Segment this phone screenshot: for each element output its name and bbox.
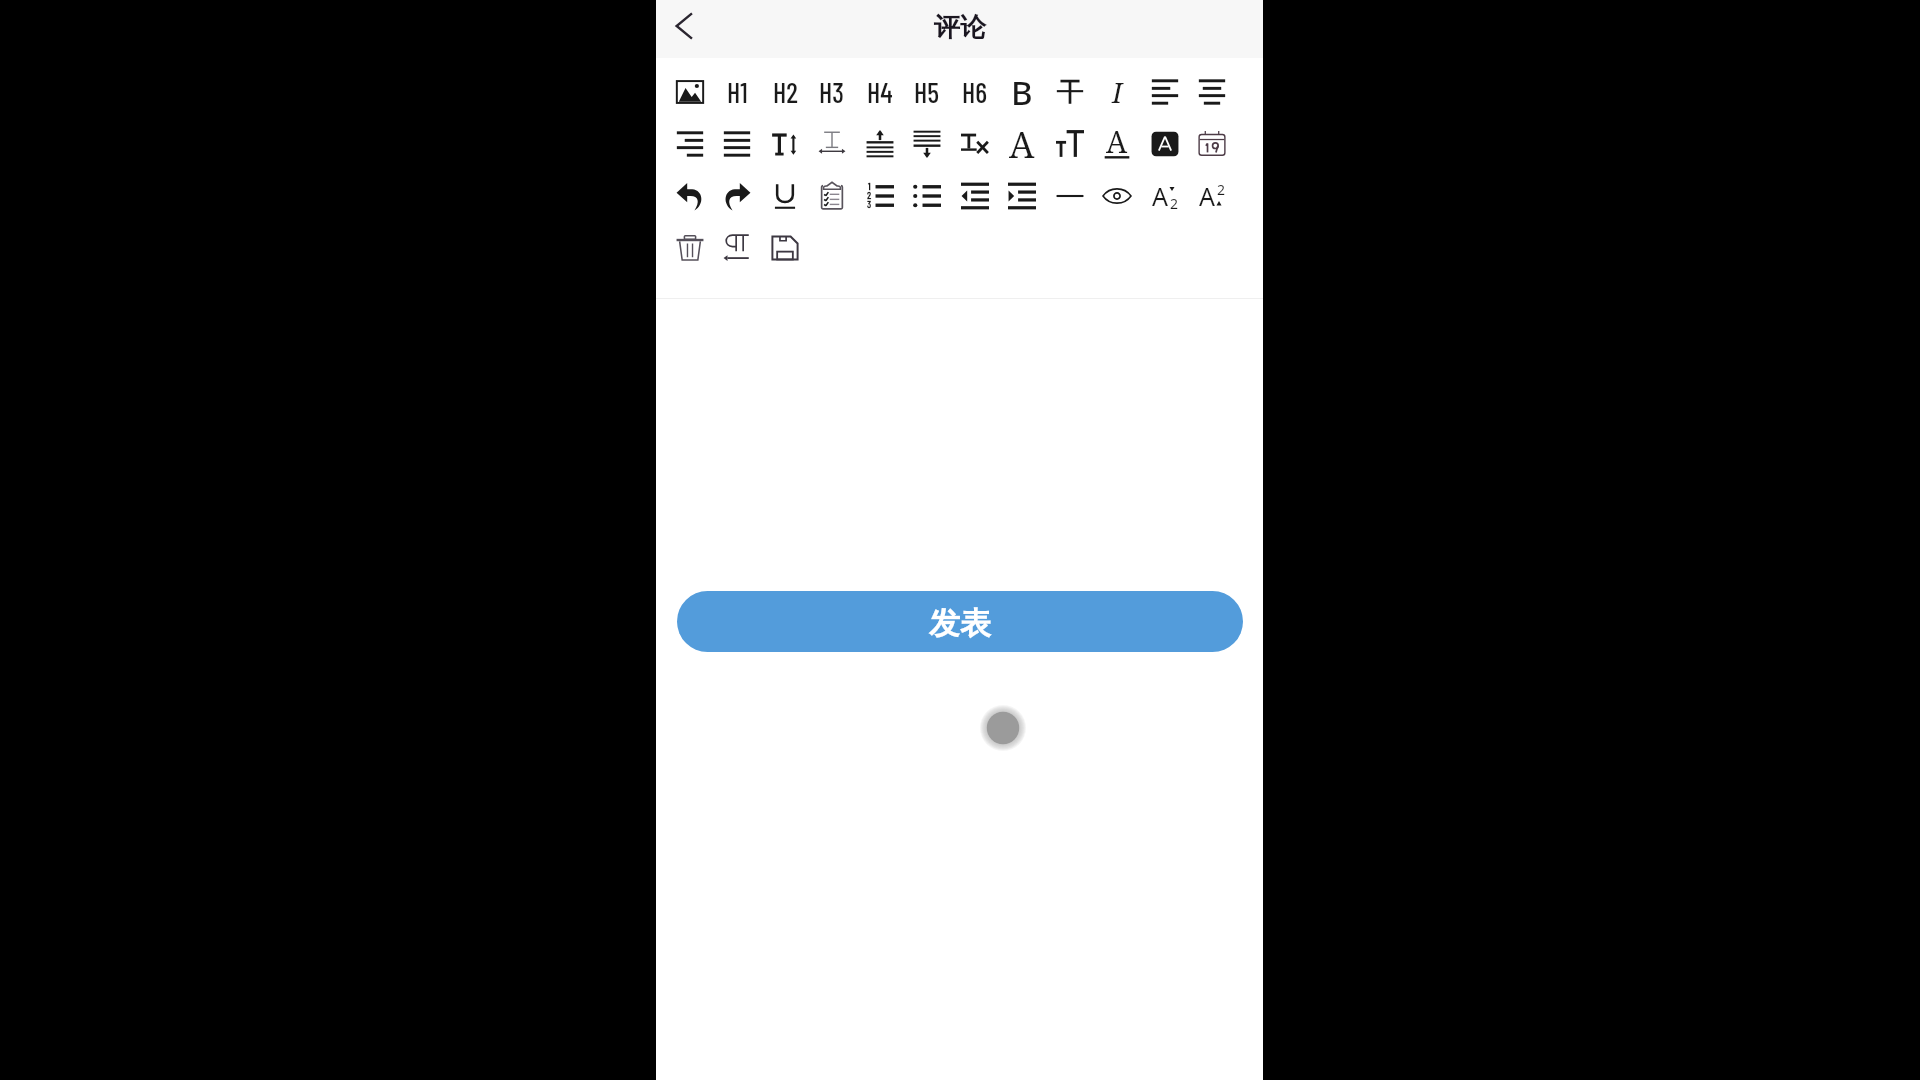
- button[interactable]: Insert date: [1188, 118, 1236, 170]
- button[interactable]: Font size: [1046, 118, 1094, 170]
- button[interactable]: H6: [951, 66, 999, 118]
- button[interactable]: H3: [808, 66, 856, 118]
- button[interactable]: Line height: [761, 118, 809, 170]
- staticText: A: [1009, 120, 1035, 169]
- button[interactable]: H1: [713, 66, 761, 118]
- button[interactable]: Subscript: [1141, 170, 1189, 222]
- button[interactable]: Background colour: [1141, 118, 1189, 170]
- button[interactable]: H5: [903, 66, 951, 118]
- button[interactable]: Align left: [1141, 66, 1189, 118]
- staticText: A: [1106, 121, 1128, 162]
- button[interactable]: Align center: [1188, 66, 1236, 118]
- staticText: H5: [914, 75, 940, 109]
- staticText: H1: [727, 75, 748, 109]
- button[interactable]: Back: [658, 0, 710, 52]
- staticText: 2: [1217, 180, 1226, 199]
- button[interactable]: Outdent: [951, 170, 999, 222]
- button[interactable]: Font family: [998, 118, 1046, 170]
- button[interactable]: Text underline: [1093, 118, 1141, 170]
- button[interactable]: Superscript: [1188, 170, 1236, 222]
- button[interactable]: Horizontal rule: [1046, 170, 1094, 222]
- button[interactable]: H2: [761, 66, 809, 118]
- staticText: H4: [867, 75, 893, 109]
- staticText: H2: [773, 75, 798, 109]
- button[interactable]: Underline: [761, 170, 809, 222]
- staticText: B: [1011, 70, 1033, 115]
- button[interactable]: Italic: [1093, 66, 1141, 118]
- button[interactable]: Bullet list: [903, 170, 951, 222]
- staticText: I: [1112, 73, 1123, 111]
- button[interactable]: Indent: [998, 170, 1046, 222]
- button[interactable]: Paste: [808, 170, 856, 222]
- staticText: H3: [819, 75, 845, 109]
- button[interactable]: Undo: [666, 170, 714, 222]
- button[interactable]: Delete: [666, 222, 714, 274]
- button[interactable]: Ordered list: [856, 170, 904, 222]
- button[interactable]: Align right: [666, 118, 714, 170]
- button[interactable]: Redo: [713, 170, 761, 222]
- button[interactable]: Clear formatting: [951, 118, 999, 170]
- button[interactable]: 发表: [677, 591, 1243, 652]
- button[interactable]: Strikethrough: [1046, 66, 1094, 118]
- button[interactable]: Bold: [998, 66, 1046, 118]
- staticText: 1: [868, 180, 871, 192]
- button[interactable]: Preview: [1093, 170, 1141, 222]
- button[interactable]: Paragraph: [713, 222, 761, 274]
- staticText: 评论: [934, 11, 986, 44]
- staticText: 发表: [929, 604, 991, 643]
- other: Loading: [980, 705, 1026, 751]
- button[interactable]: Space below: [903, 118, 951, 170]
- staticText: A: [1199, 179, 1215, 213]
- button[interactable]: Letter spacing: [808, 118, 856, 170]
- staticText: 2: [1170, 194, 1179, 213]
- staticText: A: [1152, 179, 1168, 213]
- button[interactable]: Insert image: [666, 66, 714, 118]
- button[interactable]: Justify: [713, 118, 761, 170]
- staticText: 3: [867, 198, 872, 210]
- button[interactable]: H4: [856, 66, 904, 118]
- button[interactable]: Save: [761, 222, 809, 274]
- staticText: 2: [867, 189, 872, 201]
- staticText: H6: [962, 75, 988, 109]
- button[interactable]: Space above: [856, 118, 904, 170]
